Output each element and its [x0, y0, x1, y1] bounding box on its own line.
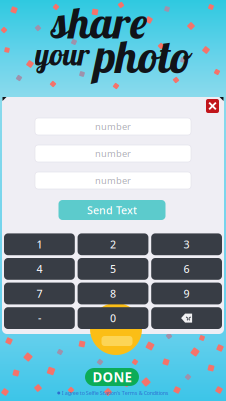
button[interactable]: 3	[151, 233, 222, 255]
staticText: 1	[36, 237, 42, 251]
button[interactable]: -	[4, 307, 75, 329]
staticText: number	[95, 120, 131, 133]
staticText: -	[38, 311, 41, 325]
staticText: 8	[110, 286, 116, 301]
staticText: 0	[110, 311, 116, 325]
button[interactable]: 2	[78, 233, 148, 255]
staticText: your	[34, 35, 89, 73]
button[interactable]: 7	[4, 283, 75, 304]
button[interactable]: I agree to Selfie Station's Terms & Cond…	[57, 389, 169, 397]
staticText: DONE	[92, 368, 131, 386]
staticText: photo	[94, 28, 192, 84]
button[interactable]: 5	[78, 258, 148, 280]
button[interactable]: Delete	[151, 307, 222, 329]
staticText: number	[95, 147, 131, 160]
button[interactable]: DONE	[85, 368, 139, 386]
button[interactable]: 9	[151, 283, 222, 304]
staticText: Send Text	[87, 203, 137, 217]
button[interactable]: Send Text	[58, 200, 165, 220]
staticText: I agree to Selfie Station's Terms & Cond…	[62, 389, 169, 397]
button[interactable]: Close	[206, 99, 219, 113]
button[interactable]: 6	[151, 258, 222, 280]
staticText: 7	[36, 286, 42, 301]
staticText: 2	[110, 237, 116, 251]
staticText: 5	[110, 262, 116, 276]
staticText: share	[51, 0, 147, 49]
staticText: 4	[36, 262, 42, 276]
staticText: 3	[184, 237, 190, 251]
staticText: 9	[184, 286, 190, 301]
staticText: 6	[184, 262, 190, 276]
staticText: number	[95, 174, 131, 187]
button[interactable]: 8	[78, 283, 148, 304]
button[interactable]: 1	[4, 233, 75, 255]
button[interactable]: 0	[78, 307, 148, 329]
button[interactable]: 4	[4, 258, 75, 280]
